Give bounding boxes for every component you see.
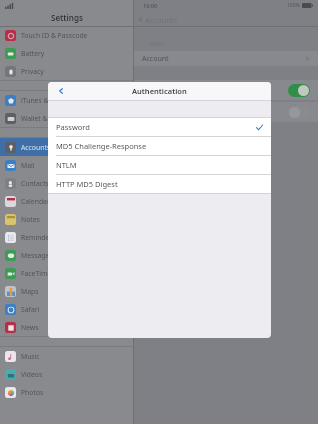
button[interactable]: Calendar [0, 192, 133, 210]
staticText: News [21, 323, 39, 332]
button[interactable]: Touch ID & Passcode [0, 26, 133, 44]
staticText: Videos [21, 370, 43, 379]
button[interactable]: FaceTime [0, 264, 133, 282]
button[interactable]: NTLM [48, 156, 271, 175]
staticText: HTTP MD5 Digest [56, 179, 118, 189]
button[interactable]: Music [0, 347, 133, 365]
button[interactable]: Mail [0, 156, 133, 174]
button[interactable]: Wallet & Apple Pay [0, 109, 133, 127]
button[interactable]: Notes [0, 210, 133, 228]
button[interactable]: Password [48, 118, 271, 137]
staticText: Privacy [21, 67, 44, 76]
staticText: MD5 Challenge-Response [56, 141, 147, 151]
button[interactable]: Photos [0, 383, 133, 401]
staticText: Notes [21, 215, 40, 224]
staticText: Password [56, 122, 90, 132]
staticText: Reminders [21, 233, 56, 242]
staticText: Photos [21, 388, 44, 397]
staticText: Battery [21, 49, 45, 58]
staticText: Settings [51, 12, 83, 23]
staticText: 10:00 [143, 2, 158, 9]
button[interactable]: Account [134, 51, 318, 66]
staticText: Maps [21, 287, 39, 296]
button[interactable]: HTTP MD5 Digest [48, 175, 271, 193]
button[interactable]: MD5 Challenge-Response [48, 137, 271, 156]
staticText: 100% [287, 2, 300, 9]
button[interactable] [134, 102, 318, 122]
staticText: Mail [21, 161, 35, 170]
staticText: Contacts [21, 179, 49, 188]
staticText: FaceTime [21, 269, 52, 278]
button[interactable]: Messages [0, 246, 133, 264]
staticText: Account [142, 54, 169, 64]
button[interactable]: Accounts [138, 13, 178, 26]
button[interactable]: Battery [0, 44, 133, 62]
button[interactable]: Reminders [0, 228, 133, 246]
button[interactable]: Videos [0, 365, 133, 383]
staticText: Authentication [132, 86, 187, 96]
button[interactable]: Maps [0, 282, 133, 300]
button[interactable]: Back [48, 82, 74, 100]
staticText: Accounts [145, 15, 178, 25]
staticText: Calendar [21, 197, 50, 206]
button[interactable]: Privacy [0, 62, 133, 80]
staticText: Messages [21, 251, 53, 260]
staticText: Safari [21, 305, 40, 314]
button[interactable]: News [0, 318, 133, 336]
staticText: NTLM [56, 160, 77, 170]
button[interactable]: iTunes & App Store [0, 91, 133, 109]
button[interactable] [134, 80, 318, 100]
staticText: Music [21, 352, 40, 361]
button[interactable]: Contacts [0, 174, 133, 192]
staticText: iTunes & App Store [21, 96, 82, 105]
staticText: Touch ID & Passcode [21, 31, 88, 40]
staticText: Accounts & Passwords [21, 143, 93, 152]
button[interactable]: Accounts & Passwords [0, 138, 133, 156]
staticText: IMAP [150, 40, 164, 47]
button[interactable]: Safari [0, 300, 133, 318]
staticText: Wallet & Apple Pay [21, 114, 81, 123]
